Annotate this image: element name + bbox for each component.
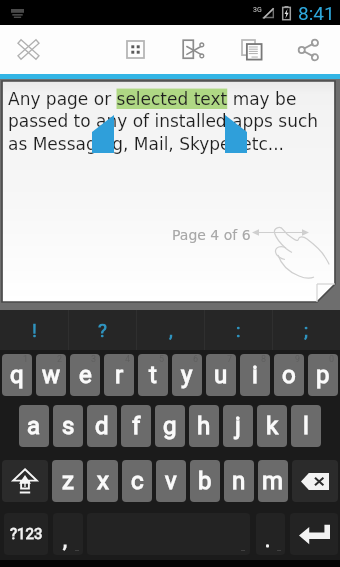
- staticText: v: [165, 467, 177, 495]
- button[interactable]: a: [19, 405, 49, 447]
- staticText: _: [75, 542, 80, 553]
- staticText: o: [282, 361, 296, 389]
- staticText: m: [262, 467, 284, 495]
- button[interactable]: v: [156, 460, 186, 502]
- button[interactable]: o: [274, 354, 304, 396]
- staticText: _: [241, 542, 246, 553]
- button[interactable]: t: [138, 354, 168, 396]
- staticText: l: [303, 412, 309, 440]
- button[interactable]: ?: [69, 310, 136, 350]
- staticText: d: [95, 412, 109, 440]
- staticText: c: [131, 467, 144, 495]
- staticText: w: [42, 361, 61, 389]
- button[interactable]: ,: [137, 310, 204, 350]
- button[interactable]: l: [291, 405, 321, 447]
- button[interactable]: w: [36, 354, 66, 396]
- staticText: 2: [57, 354, 63, 365]
- button[interactable]: Backspace: [292, 460, 338, 502]
- staticText: 9: [295, 354, 301, 365]
- button[interactable]: :: [205, 310, 272, 350]
- button[interactable]: x: [87, 460, 118, 502]
- staticText: b: [198, 467, 212, 495]
- staticText: x: [97, 467, 109, 495]
- button[interactable]: ;: [273, 310, 340, 350]
- staticText: y: [181, 361, 193, 389]
- staticText: n: [232, 467, 246, 495]
- staticText: g: [163, 412, 177, 440]
- staticText: .: [265, 528, 271, 551]
- button[interactable]: u: [206, 354, 236, 396]
- staticText: 5: [159, 354, 165, 365]
- staticText: p: [316, 361, 330, 389]
- button[interactable]: Period: [256, 513, 285, 555]
- staticText: 4: [125, 354, 131, 365]
- staticText: f: [132, 412, 141, 440]
- button[interactable]: Enter: [290, 513, 338, 555]
- staticText: 0: [329, 354, 335, 365]
- staticText: s: [62, 412, 75, 440]
- button[interactable]: g: [155, 405, 185, 447]
- staticText: ?: [98, 319, 107, 341]
- staticText: q: [10, 361, 24, 389]
- button[interactable]: c: [122, 460, 152, 502]
- staticText: _: [277, 542, 282, 553]
- button[interactable]: h: [189, 405, 219, 447]
- staticText: a: [27, 412, 41, 440]
- staticText: 3: [91, 354, 97, 365]
- button[interactable]: Share: [280, 25, 338, 74]
- staticText: ;: [304, 319, 309, 341]
- button[interactable]: s: [53, 405, 83, 447]
- button[interactable]: b: [190, 460, 220, 502]
- staticText: j: [235, 412, 241, 440]
- staticText: i: [252, 361, 258, 389]
- staticText: 3G: [253, 6, 262, 14]
- button[interactable]: z: [52, 460, 83, 502]
- staticText: :: [236, 319, 241, 341]
- button[interactable]: !: [0, 310, 68, 350]
- staticText: Any page or selected text may be passed …: [8, 89, 335, 154]
- button[interactable]: n: [224, 460, 254, 502]
- button[interactable]: Symbols: [4, 513, 48, 555]
- button[interactable]: Close: [0, 25, 56, 74]
- staticText: 6: [193, 354, 199, 365]
- button[interactable]: k: [257, 405, 287, 447]
- button[interactable]: m: [258, 460, 288, 502]
- button[interactable]: Shift: [2, 460, 48, 502]
- staticText: r: [115, 361, 124, 389]
- button[interactable]: Select all: [106, 25, 164, 74]
- staticText: !: [32, 319, 37, 341]
- staticText: t: [149, 361, 157, 389]
- staticText: Page 4 of 6: [172, 227, 251, 243]
- button[interactable]: d: [87, 405, 117, 447]
- button[interactable]: p: [308, 354, 338, 396]
- button[interactable]: y: [172, 354, 202, 396]
- button[interactable]: f: [121, 405, 151, 447]
- staticText: u: [214, 361, 228, 389]
- staticText: 8:41: [298, 2, 335, 24]
- staticText: ,: [169, 319, 173, 341]
- button[interactable]: j: [223, 405, 253, 447]
- staticText: k: [266, 412, 279, 440]
- staticText: ?123: [10, 525, 43, 543]
- staticText: z: [62, 467, 74, 495]
- staticText: e: [79, 361, 92, 389]
- staticText: ,: [63, 528, 67, 551]
- button[interactable]: Copy: [222, 25, 280, 74]
- button[interactable]: r: [104, 354, 134, 396]
- button[interactable]: i: [240, 354, 270, 396]
- button[interactable]: Comma: [53, 513, 83, 555]
- staticText: 8: [261, 354, 267, 365]
- button[interactable]: e: [70, 354, 100, 396]
- staticText: h: [197, 412, 211, 440]
- button[interactable]: q: [2, 354, 32, 396]
- button[interactable]: Cut: [164, 25, 222, 74]
